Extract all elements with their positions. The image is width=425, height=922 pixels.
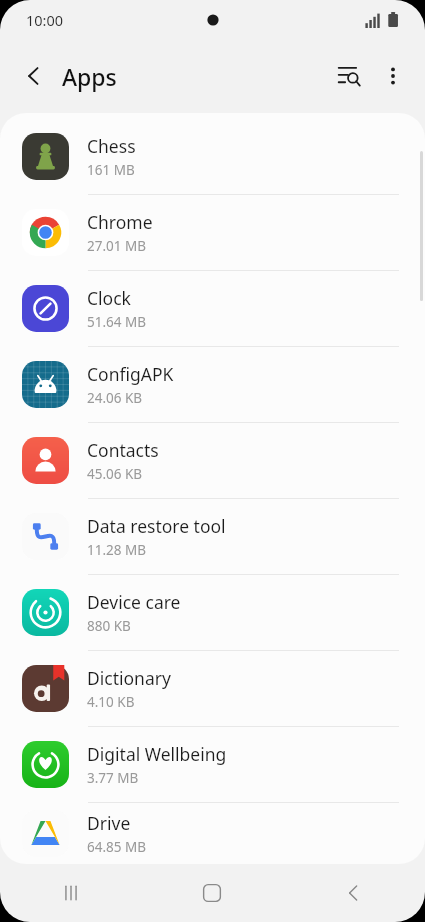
staticText: 24.06 KB (87, 389, 143, 407)
button[interactable]: ConfigAPK (0, 347, 425, 423)
staticText: 10:00 (26, 10, 64, 30)
button[interactable]: Clock (0, 271, 425, 347)
staticText: Device care (87, 590, 181, 614)
staticText: Chrome (87, 210, 153, 234)
button[interactable]: Back (283, 864, 425, 922)
button[interactable]: Data restore tool (0, 499, 425, 575)
button[interactable]: Contacts (0, 423, 425, 499)
button[interactable]: Digital Wellbeing (0, 727, 425, 803)
button[interactable]: Device care (0, 575, 425, 651)
button[interactable]: Home (141, 864, 283, 922)
staticText: Dictionary (87, 666, 171, 690)
button[interactable]: Back (14, 56, 54, 96)
staticText: 4.10 KB (87, 693, 135, 711)
button[interactable]: Chrome (0, 195, 425, 271)
button[interactable]: Recent apps (0, 864, 141, 922)
staticText: 45.06 KB (87, 465, 143, 483)
staticText: 51.64 MB (87, 313, 147, 331)
staticText: Contacts (87, 438, 159, 462)
button[interactable]: Dictionary (0, 651, 425, 727)
staticText: Drive (87, 811, 131, 835)
staticText: 11.28 MB (87, 541, 147, 559)
button[interactable]: More options (371, 54, 415, 98)
staticText: 27.01 MB (87, 237, 147, 255)
staticText: 880 KB (87, 617, 131, 635)
staticText: Digital Wellbeing (87, 742, 227, 766)
staticText: ConfigAPK (87, 362, 174, 386)
staticText: Data restore tool (87, 514, 226, 538)
button[interactable]: Search and filter (327, 54, 371, 98)
staticText: Apps (62, 61, 117, 92)
button[interactable]: Chess (0, 119, 425, 195)
staticText: Chess (87, 134, 136, 158)
staticText: 3.77 MB (87, 769, 139, 787)
staticText: 64.85 MB (87, 838, 147, 856)
staticText: 161 MB (87, 161, 135, 179)
button[interactable]: Drive (0, 803, 425, 864)
staticText: Clock (87, 286, 131, 310)
